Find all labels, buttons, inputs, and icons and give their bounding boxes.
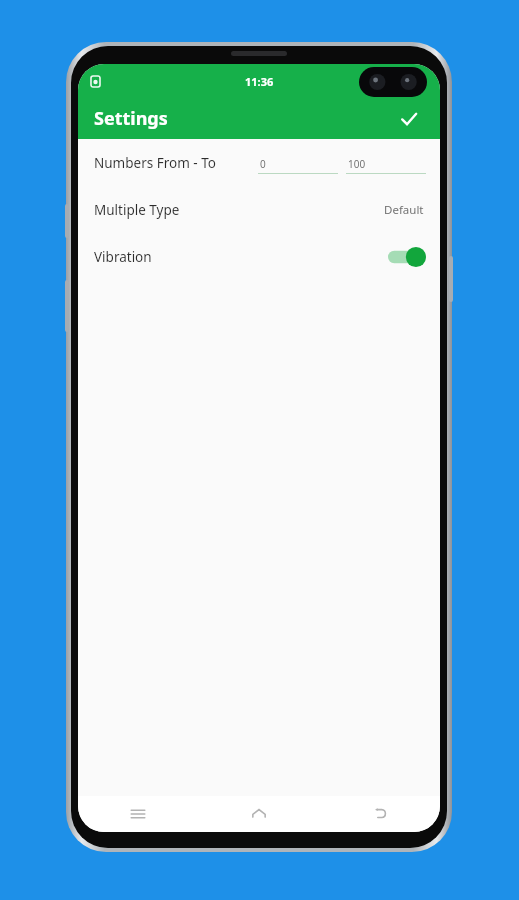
staticText: 0 xyxy=(260,157,266,171)
staticText: 100 xyxy=(348,157,366,171)
staticText: Default xyxy=(384,202,424,218)
button[interactable]: Recent apps xyxy=(78,796,198,832)
staticText: Vibration xyxy=(94,248,152,266)
staticText: Settings xyxy=(94,106,168,131)
button[interactable]: Home xyxy=(198,796,319,832)
staticText: 11:36 xyxy=(245,74,274,89)
button[interactable]: Confirm xyxy=(390,100,428,138)
button[interactable]: Numbers From - To xyxy=(78,139,440,186)
staticText: Numbers From - To xyxy=(94,154,216,172)
button[interactable]: Back xyxy=(319,796,440,832)
button[interactable]: 0 xyxy=(258,152,338,174)
button[interactable]: Vibration toggle xyxy=(388,245,426,269)
button[interactable]: 100 xyxy=(346,152,426,174)
button[interactable]: Multiple Type xyxy=(78,186,440,233)
staticText: Multiple Type xyxy=(94,201,180,219)
button[interactable]: Vibration xyxy=(78,233,440,280)
